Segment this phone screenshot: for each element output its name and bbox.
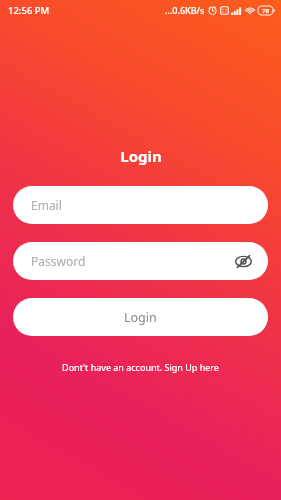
button[interactable]: Show password <box>230 248 256 274</box>
staticText: Email <box>31 197 62 213</box>
staticText: Dont't have an account. Sign Up here <box>62 361 219 373</box>
staticText: 78 <box>262 7 269 15</box>
button[interactable]: Dont't have an account. Sign Up here <box>62 361 219 373</box>
staticText: Login <box>124 309 157 326</box>
staticText: Password <box>31 253 86 269</box>
staticText: 12:56 PM <box>8 4 50 17</box>
staticText: Login <box>120 146 162 166</box>
button[interactable]: Password <box>13 242 268 280</box>
button[interactable]: Email <box>13 186 268 224</box>
button[interactable]: Login <box>13 298 268 336</box>
staticText: …0.6KB/s <box>165 4 205 16</box>
